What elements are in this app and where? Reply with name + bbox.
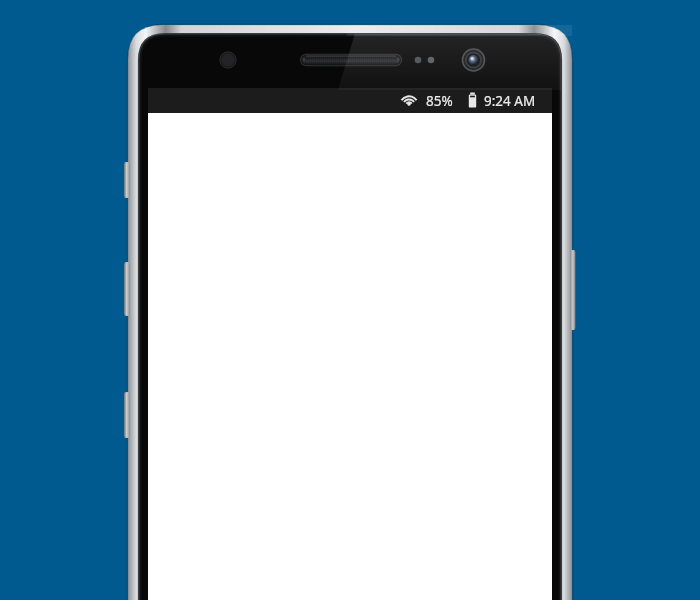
button[interactable]: Phone device frame with app screen [0,0,700,600]
